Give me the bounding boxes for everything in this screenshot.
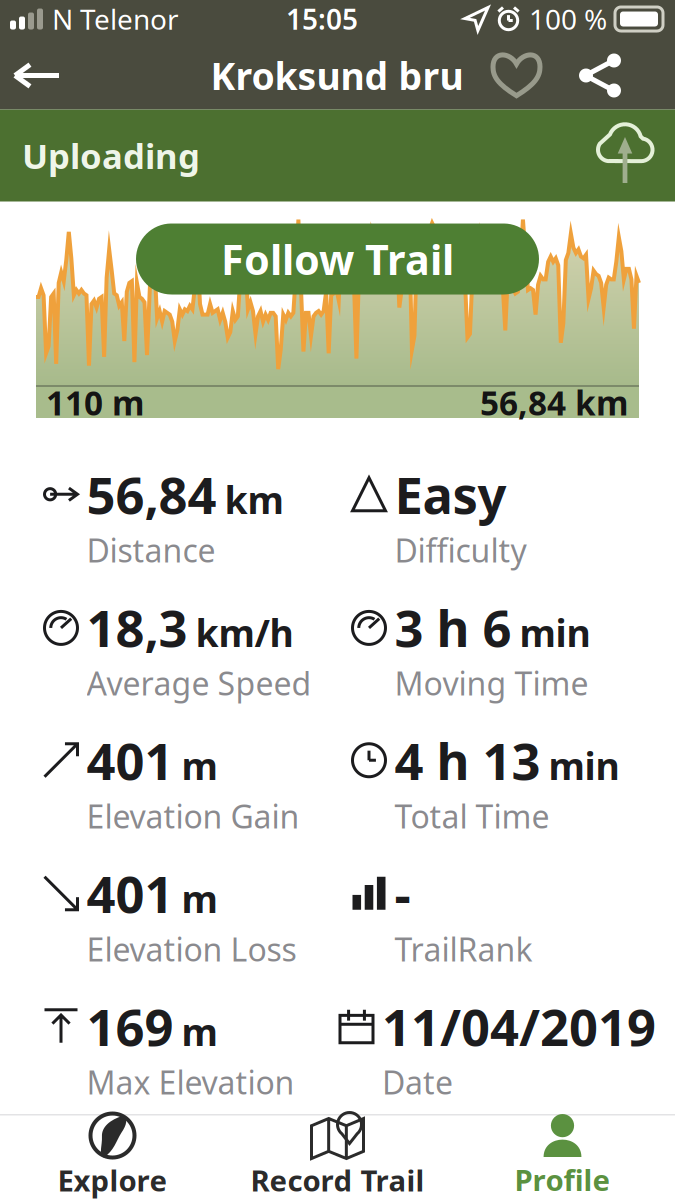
- staticText: Average Speed: [86, 662, 311, 704]
- staticText: km/h: [195, 608, 293, 657]
- staticText: min: [548, 741, 619, 790]
- staticText: 56,84 km: [480, 380, 629, 425]
- staticText: min: [519, 608, 590, 657]
- staticText: km: [224, 475, 283, 524]
- staticText: Elevation Gain: [86, 795, 299, 837]
- staticText: Moving Time: [394, 662, 588, 704]
- button[interactable]: Share: [560, 41, 675, 109]
- staticText: m: [181, 741, 217, 790]
- staticText: Easy: [394, 461, 506, 528]
- staticText: Difficulty: [394, 529, 526, 571]
- staticText: 3 h 6: [394, 594, 511, 661]
- button[interactable]: Record Trail: [225, 1115, 450, 1200]
- staticText: Follow Trail: [221, 232, 454, 286]
- staticText: Profile: [514, 1160, 610, 1199]
- staticText: Explore: [57, 1160, 167, 1199]
- staticText: 15:05: [286, 0, 358, 38]
- staticText: N Telenor: [52, 0, 179, 38]
- staticText: 169: [86, 993, 173, 1060]
- staticText: Distance: [86, 529, 215, 571]
- staticText: Elevation Loss: [86, 928, 296, 970]
- staticText: Total Time: [394, 795, 549, 837]
- staticText: Uploading: [22, 132, 200, 178]
- staticText: Record Trail: [250, 1160, 424, 1199]
- staticText: 18,3: [86, 594, 187, 661]
- staticText: -: [394, 860, 410, 927]
- staticText: 4 h 13: [394, 727, 540, 794]
- staticText: m: [181, 874, 217, 923]
- button[interactable]: Explore: [0, 1115, 225, 1200]
- button[interactable]: Favourite: [480, 40, 560, 111]
- staticText: 11/04/2019: [382, 993, 656, 1060]
- staticText: 56,84: [86, 461, 216, 528]
- button[interactable]: Follow Trail: [136, 223, 539, 294]
- button[interactable]: Back: [0, 43, 74, 107]
- staticText: 401: [86, 860, 173, 927]
- staticText: Kroksund bru: [210, 51, 463, 100]
- staticText: m: [181, 1007, 217, 1056]
- button[interactable]: Profile: [450, 1115, 675, 1200]
- staticText: 110 m: [46, 380, 145, 425]
- staticText: 100 %: [529, 0, 607, 38]
- staticText: TrailRank: [394, 928, 532, 970]
- staticText: Max Elevation: [86, 1061, 294, 1103]
- staticText: 401: [86, 727, 173, 794]
- staticText: Date: [382, 1061, 453, 1103]
